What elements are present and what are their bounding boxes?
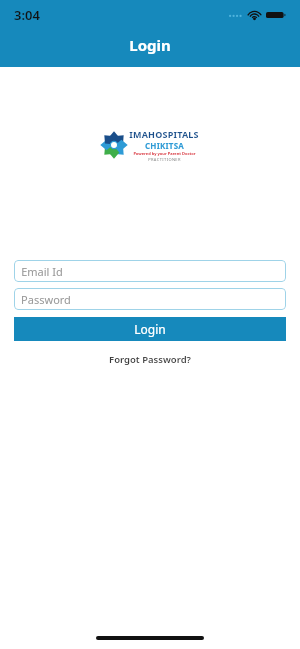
button[interactable]: Password (14, 288, 286, 310)
staticText: Login (134, 321, 166, 337)
staticText: PRACTITIONER (148, 157, 181, 162)
staticText: Password (21, 292, 71, 307)
staticText: IMAHOSPITALS (129, 128, 199, 140)
staticText: 3:04 (14, 6, 40, 24)
button[interactable]: Login (14, 317, 286, 341)
button[interactable]: Forgot Password? (101, 351, 199, 368)
button[interactable]: Email Id (14, 260, 286, 282)
staticText: Email Id (21, 264, 63, 279)
staticText: Forgot Password? (109, 353, 191, 366)
staticText: Powered by your Parent Doctor (133, 151, 196, 156)
staticText: CHIKITSA (145, 140, 184, 151)
staticText: Login (129, 35, 171, 55)
